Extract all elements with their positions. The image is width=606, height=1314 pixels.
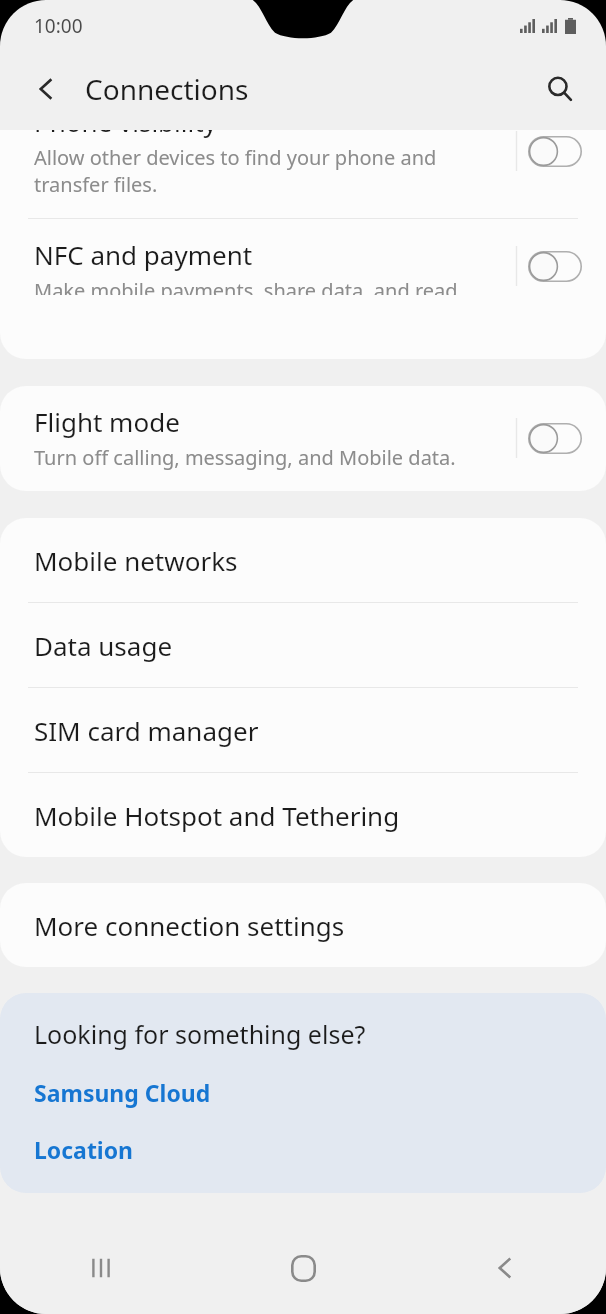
staticText: Samsung Cloud: [34, 1077, 211, 1108]
button[interactable]: SIM card manager: [0, 688, 606, 772]
staticText: More connection settings: [34, 908, 345, 943]
button[interactable]: Location: [0, 1132, 606, 1167]
button[interactable]: Home: [202, 1222, 404, 1314]
button[interactable]: Mobile networks: [0, 518, 606, 602]
button[interactable]: Flight mode: [0, 386, 606, 491]
button[interactable]: NFC and payment: [0, 219, 606, 315]
staticText: Flight mode: [34, 404, 180, 439]
staticText: Connections: [85, 70, 249, 108]
button[interactable]: NFC and payment toggle: [526, 249, 584, 283]
button[interactable]: Phone visibility toggle: [526, 134, 584, 168]
button[interactable]: Data usage: [0, 603, 606, 687]
button[interactable]: Back: [404, 1222, 606, 1314]
button[interactable]: Search: [534, 63, 586, 115]
staticText: NFC and payment: [34, 237, 253, 272]
staticText: Make mobile payments, share data, and re…: [34, 277, 458, 295]
button[interactable]: Back: [20, 63, 72, 115]
button[interactable]: Recents: [0, 1222, 202, 1314]
button[interactable]: Samsung Cloud: [0, 1075, 606, 1110]
staticText: Turn off calling, messaging, and Mobile …: [34, 444, 456, 471]
button[interactable]: Phone visibility: [0, 130, 606, 218]
staticText: 10:00: [34, 13, 83, 39]
staticText: Phone visibility: [34, 130, 217, 139]
staticText: Allow other devices to find your phone a…: [34, 144, 437, 198]
staticText: Mobile Hotspot and Tethering: [34, 798, 400, 833]
staticText: Looking for something else?: [34, 1017, 366, 1051]
staticText: Mobile networks: [34, 543, 238, 578]
staticText: Location: [34, 1134, 134, 1165]
button[interactable]: Mobile Hotspot and Tethering: [0, 773, 606, 857]
button[interactable]: More connection settings: [0, 883, 606, 967]
staticText: Data usage: [34, 628, 173, 663]
button[interactable]: Flight mode toggle: [526, 421, 584, 455]
staticText: SIM card manager: [34, 713, 259, 748]
